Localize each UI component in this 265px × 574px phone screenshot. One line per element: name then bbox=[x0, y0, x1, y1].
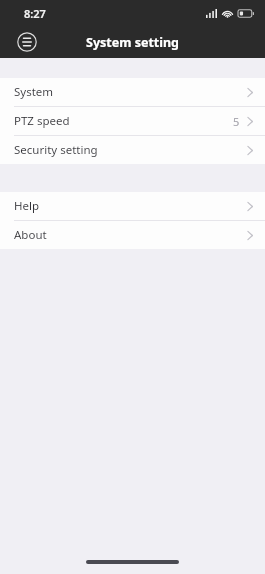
staticText: PTZ speed bbox=[14, 113, 70, 129]
button[interactable]: System bbox=[0, 78, 265, 106]
button[interactable]: About bbox=[0, 221, 265, 249]
button[interactable]: Security setting bbox=[0, 136, 265, 164]
staticText: About bbox=[14, 227, 47, 243]
button[interactable]: Help bbox=[0, 192, 265, 220]
staticText: 8:27 bbox=[24, 6, 46, 21]
button[interactable]: Menu bbox=[14, 29, 40, 55]
staticText: Help bbox=[14, 198, 40, 214]
button[interactable]: PTZ speed bbox=[0, 107, 265, 135]
staticText: Security setting bbox=[14, 142, 98, 158]
staticText: 5 bbox=[233, 114, 240, 129]
staticText: System bbox=[14, 84, 54, 100]
staticText: System setting bbox=[86, 34, 179, 51]
